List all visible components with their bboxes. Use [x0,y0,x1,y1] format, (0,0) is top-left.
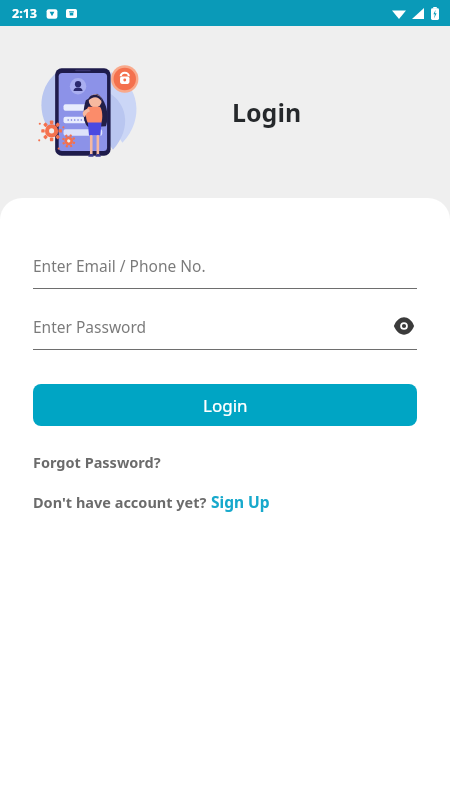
button[interactable]: Show password [391,313,417,339]
button[interactable]: Enter Email / Phone No. [33,250,417,289]
staticText: Enter Password [33,316,147,337]
staticText: 2:13 [12,5,37,22]
staticText: Don't have account yet? [33,492,211,512]
button[interactable]: Forgot Password? [33,449,161,475]
button[interactable]: Login [33,384,417,426]
staticText: Login [203,394,248,417]
button[interactable]: Sign Up [211,488,270,515]
staticText: Sign Up [211,491,270,512]
staticText: Login [232,95,302,129]
staticText: Enter Email / Phone No. [33,255,206,276]
button[interactable]: Enter Password [33,311,417,350]
staticText: Forgot Password? [33,452,161,472]
